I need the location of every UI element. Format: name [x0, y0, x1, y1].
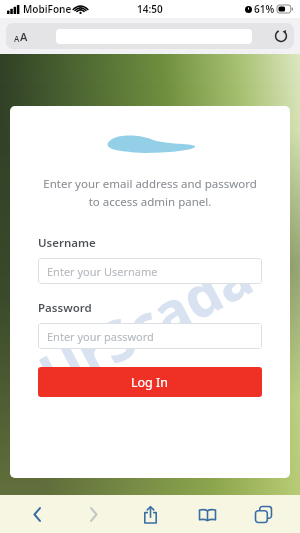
- staticText: Enter your password: [47, 329, 154, 344]
- button[interactable]: Reload: [274, 29, 288, 43]
- staticText: Password: [38, 300, 92, 316]
- button[interactable]: Enter your Username: [38, 258, 262, 284]
- staticText: Enter your Username: [47, 264, 158, 279]
- button[interactable]: Share: [130, 495, 170, 533]
- staticText: UrScada: [26, 236, 264, 412]
- button[interactable]: Address bar: [6, 23, 294, 49]
- button[interactable]: Enter your password: [38, 323, 262, 349]
- staticText: 61%: [254, 2, 275, 16]
- button[interactable]: Tabs: [243, 495, 283, 533]
- staticText: A: [20, 29, 28, 44]
- staticText: MobiFone: [23, 2, 72, 16]
- staticText: Enter your email address and password to…: [38, 176, 262, 209]
- button[interactable]: Back: [17, 495, 57, 533]
- staticText: 14:50: [137, 2, 163, 16]
- button[interactable]: Log In: [38, 367, 262, 397]
- staticText: A: [14, 33, 20, 44]
- button[interactable]: Forward: [73, 495, 113, 533]
- button[interactable]: Bookmarks: [187, 495, 227, 533]
- staticText: Username: [38, 235, 96, 251]
- staticText: Log In: [131, 374, 169, 391]
